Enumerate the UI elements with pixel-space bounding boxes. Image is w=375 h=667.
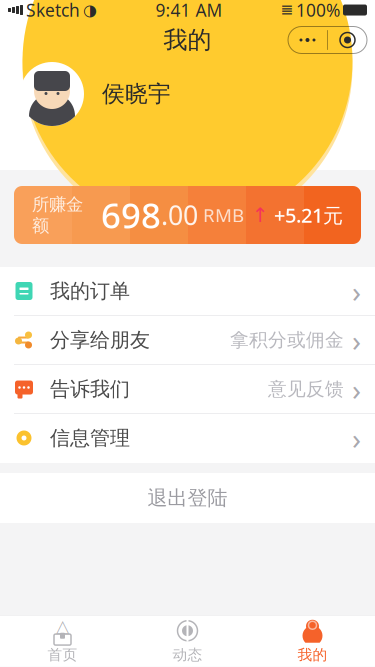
staticText: 侯晓宇 <box>102 80 171 108</box>
button[interactable]: 分享给朋友 <box>0 316 375 365</box>
staticText: .00 <box>161 197 198 233</box>
staticText: +5.21元 <box>269 202 343 228</box>
staticText: 我的 <box>297 646 327 664</box>
staticText: 100% <box>296 0 340 21</box>
button[interactable]: 我的订单 <box>0 267 375 316</box>
button[interactable]: △ <box>0 616 125 667</box>
staticText: › <box>352 271 361 310</box>
staticText: › <box>352 369 361 408</box>
staticText: ◑ <box>83 1 97 19</box>
staticText: △ <box>56 616 69 636</box>
button[interactable]: 告诉我们 <box>0 365 375 414</box>
button[interactable]: 信息管理 <box>0 414 375 463</box>
button[interactable]: More options <box>288 26 367 53</box>
staticText: 动态 <box>172 646 202 664</box>
staticText: › <box>352 320 361 359</box>
button[interactable]: 退出登陆 <box>0 473 375 523</box>
staticText: 首页 <box>47 646 77 664</box>
staticText: 信息管理 <box>50 426 130 450</box>
staticText: 𝌆 <box>281 2 293 17</box>
button[interactable]: 动态 <box>125 616 250 667</box>
staticText: ↑ <box>252 204 269 226</box>
staticText: 拿积分或佣金 <box>230 328 344 351</box>
staticText: 告诉我们 <box>50 377 130 401</box>
staticText: RMB <box>198 203 244 227</box>
staticText: 所赚金额 <box>32 194 83 236</box>
staticText: 分享给朋友 <box>50 328 150 352</box>
staticText: 698 <box>83 192 161 238</box>
staticText: Sketch <box>26 0 80 21</box>
staticText: 意见反馈 <box>268 377 344 400</box>
staticText: 退出登陆 <box>147 486 227 510</box>
staticText: 我的订单 <box>50 279 130 303</box>
button[interactable]: 我的 <box>250 616 375 667</box>
staticText: 9:41 AM <box>155 0 222 21</box>
staticText: 我的 <box>163 25 211 55</box>
staticText: › <box>352 418 361 457</box>
